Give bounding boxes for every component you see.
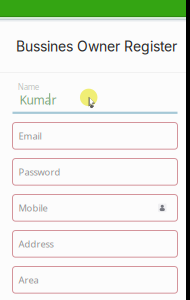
staticText: Name <box>18 82 40 92</box>
staticText: Mobile <box>18 202 47 214</box>
staticText: Address <box>18 238 53 250</box>
staticText: Bussines Owner Register <box>16 38 177 55</box>
staticText: Kumar <box>19 92 56 108</box>
button[interactable]: Email <box>12 122 177 149</box>
button[interactable]: Password <box>12 158 177 185</box>
button[interactable]: Mobile <box>12 194 177 221</box>
staticText: Email <box>18 130 41 142</box>
staticText: Area <box>18 274 38 286</box>
button[interactable]: Address <box>12 230 177 257</box>
staticText: Password <box>18 166 60 178</box>
button[interactable]: Area <box>12 266 177 293</box>
